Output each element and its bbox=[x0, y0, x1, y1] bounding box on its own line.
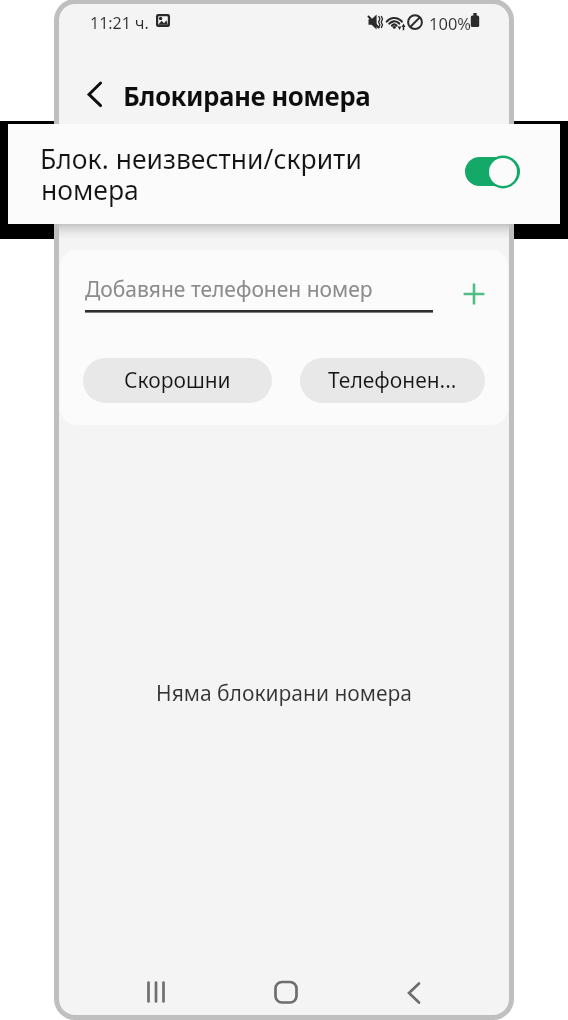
button[interactable]: Recents bbox=[132, 968, 180, 1015]
button[interactable]: Add number bbox=[454, 274, 494, 314]
button[interactable]: Блок. неизвестни/скрити bbox=[8, 124, 560, 224]
staticText: Няма блокирани номера bbox=[59, 679, 509, 708]
staticText: Телефонен... bbox=[328, 366, 457, 395]
button[interactable]: Block unknown numbers toggle bbox=[465, 157, 520, 186]
staticText: Скорошни bbox=[124, 366, 231, 395]
staticText: Блок. неизвестни/скрити bbox=[40, 141, 362, 177]
button[interactable]: Back bbox=[390, 969, 438, 1015]
button[interactable]: Скорошни bbox=[83, 358, 272, 403]
staticText: Блокиране номера bbox=[123, 78, 371, 113]
staticText: номера bbox=[41, 172, 139, 208]
staticText: 100% bbox=[429, 12, 472, 34]
button[interactable]: Back bbox=[75, 71, 121, 117]
staticText: Добавяне телефонен номер bbox=[85, 275, 373, 304]
button[interactable]: Home bbox=[262, 968, 310, 1015]
button[interactable]: Телефонен... bbox=[300, 358, 485, 403]
staticText: 11:21 ч. bbox=[90, 12, 149, 34]
